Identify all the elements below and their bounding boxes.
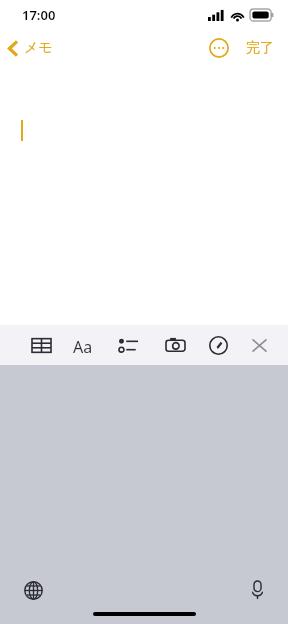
staticText: 完了 (246, 39, 274, 57)
button[interactable]: Markup (203, 330, 233, 360)
staticText: Aa (73, 336, 93, 358)
button[interactable]: More options (205, 34, 233, 62)
staticText: 17:00 (22, 6, 56, 24)
button[interactable]: Text format (69, 330, 99, 360)
button[interactable]: メモ (0, 35, 61, 61)
button[interactable]: Close keyboard (244, 330, 274, 360)
button[interactable]: Dictate (242, 575, 272, 605)
staticText: メモ (24, 39, 53, 57)
button[interactable]: Camera (160, 330, 190, 360)
button[interactable]: Change keyboard (18, 575, 48, 605)
button[interactable]: 完了 (242, 35, 278, 61)
button[interactable]: Checklist (113, 330, 143, 360)
button[interactable]: Table (26, 330, 56, 360)
